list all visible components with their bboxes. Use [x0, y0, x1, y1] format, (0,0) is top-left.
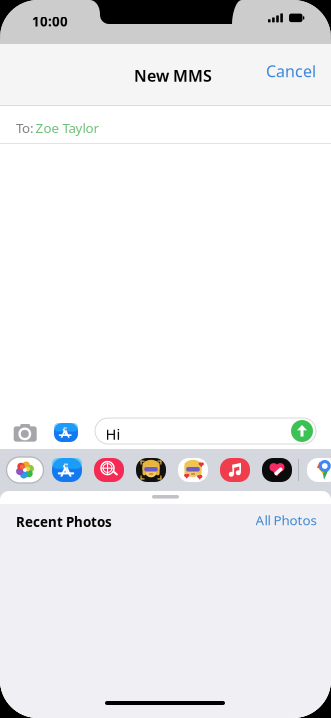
button[interactable]: App Store: [52, 458, 82, 482]
staticText: Hi: [105, 424, 120, 444]
button[interactable]: Photos: [6, 457, 43, 483]
staticText: Cancel: [266, 60, 316, 82]
staticText: 10:00: [32, 12, 68, 30]
button[interactable]: Image Search: [94, 458, 124, 482]
button[interactable]: All Photos: [240, 513, 316, 527]
button[interactable]: Health: [262, 458, 292, 482]
button[interactable]: Cancel: [260, 58, 316, 84]
button[interactable]: Music: [220, 458, 250, 482]
staticText: Recent Photos: [16, 513, 112, 531]
staticText: All Photos: [255, 511, 316, 529]
staticText: To:: [16, 119, 34, 137]
button[interactable]: Memoji: [136, 458, 166, 482]
button[interactable]: Camera: [14, 424, 37, 442]
button[interactable]: Memoji: [178, 458, 208, 482]
staticText: Zoe Taylor: [35, 119, 99, 137]
button[interactable]: App Store: [54, 423, 78, 442]
button[interactable]: Maps: [307, 458, 331, 482]
staticText: New MMS: [134, 65, 212, 86]
button[interactable]: Send: [291, 420, 313, 442]
